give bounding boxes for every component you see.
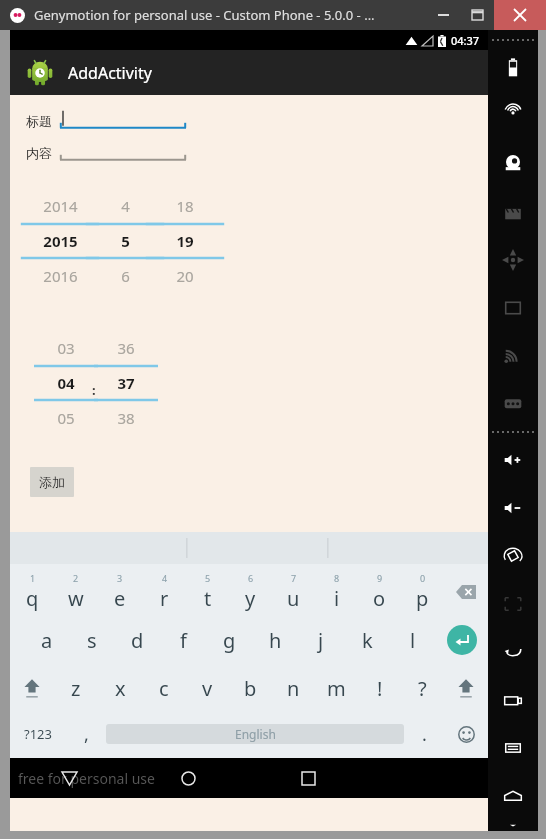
button[interactable]: Back xyxy=(488,628,538,676)
button[interactable]: 5 xyxy=(186,568,229,616)
staticText: ?123 xyxy=(24,725,52,743)
button[interactable] xyxy=(60,139,186,161)
staticText: p xyxy=(416,585,429,612)
staticText: 04:37 xyxy=(451,33,480,48)
staticText: 内容 xyxy=(26,145,52,161)
staticText: ! xyxy=(377,675,383,702)
button[interactable]: 2 xyxy=(54,568,98,616)
button[interactable]: Camera xyxy=(488,140,538,188)
button[interactable]: 2014 xyxy=(11,191,109,299)
button[interactable]: 6 xyxy=(229,568,272,616)
button[interactable]: g xyxy=(206,616,252,664)
button[interactable]: Record xyxy=(488,188,538,236)
button[interactable]: 4 xyxy=(142,568,186,616)
button[interactable]: Close xyxy=(494,0,546,30)
button[interactable]: 1 xyxy=(10,568,54,616)
button[interactable] xyxy=(60,107,186,129)
staticText: 7 xyxy=(291,572,297,584)
button[interactable]: Rotate xyxy=(488,532,538,580)
button[interactable]: Back xyxy=(10,758,129,798)
button[interactable]: Home xyxy=(488,772,538,820)
button[interactable]: Minimize xyxy=(426,0,460,30)
button[interactable]: Zoom 1:1 xyxy=(488,580,538,628)
button[interactable]: 18 xyxy=(136,191,234,299)
button[interactable]: d xyxy=(114,616,160,664)
button[interactable]: Backspace xyxy=(444,568,488,616)
staticText: 1 xyxy=(30,572,36,584)
button[interactable]: 3 xyxy=(98,568,142,616)
button[interactable]: s xyxy=(69,616,114,664)
button[interactable]: Volume down xyxy=(488,484,538,532)
staticText: AddActivity xyxy=(68,62,152,84)
button[interactable]: 8 xyxy=(315,568,358,616)
button[interactable]: ? xyxy=(401,664,444,712)
button[interactable]: Shift xyxy=(444,664,488,712)
button[interactable]: 添加 xyxy=(30,467,74,497)
staticText: 18 xyxy=(176,196,194,216)
button[interactable]: D-Pad xyxy=(488,236,538,284)
button[interactable]: j xyxy=(298,616,344,664)
button[interactable]: Recent apps xyxy=(488,676,538,724)
staticText: m xyxy=(327,675,346,702)
button[interactable]: l xyxy=(390,616,436,664)
staticText: b xyxy=(244,675,257,702)
button[interactable]: 7 xyxy=(272,568,315,616)
staticText: free for personal use xyxy=(18,769,155,788)
button[interactable]: Enter xyxy=(436,616,488,664)
button[interactable]: z xyxy=(54,664,98,712)
staticText: 0 xyxy=(420,572,426,584)
button[interactable]: 4 xyxy=(76,191,174,299)
button[interactable]: Menu xyxy=(488,724,538,772)
staticText: : xyxy=(92,381,96,399)
button[interactable]: Recents xyxy=(248,758,368,798)
staticText: y xyxy=(245,585,256,612)
button[interactable]: k xyxy=(344,616,390,664)
button[interactable]: GPS xyxy=(488,92,538,140)
button[interactable]: m xyxy=(315,664,358,712)
button[interactable]: h xyxy=(252,616,298,664)
button[interactable]: 0 xyxy=(401,568,444,616)
button[interactable]: 36 xyxy=(86,333,166,441)
staticText: 5 xyxy=(121,231,130,251)
staticText: 4 xyxy=(162,572,168,584)
staticText: 37 xyxy=(117,373,135,393)
staticText: 9 xyxy=(377,572,383,584)
button[interactable]: ?123 xyxy=(10,712,66,756)
button[interactable]: f xyxy=(160,616,206,664)
button[interactable]: , xyxy=(66,712,106,756)
button[interactable]: Identifiers xyxy=(488,284,538,332)
staticText: 3 xyxy=(117,572,123,584)
staticText: d xyxy=(131,627,144,654)
button[interactable]: SMS xyxy=(488,380,538,428)
staticText: 2016 xyxy=(43,266,78,286)
staticText: a xyxy=(41,627,53,654)
staticText: 4 xyxy=(121,196,130,216)
button[interactable]: n xyxy=(272,664,315,712)
staticText: i xyxy=(334,585,340,612)
button[interactable]: x xyxy=(98,664,142,712)
staticText: 2 xyxy=(73,572,79,584)
button[interactable]: Home xyxy=(129,758,248,798)
button[interactable]: Network xyxy=(488,332,538,380)
button[interactable]: Battery xyxy=(488,44,538,92)
button[interactable]: a xyxy=(24,616,69,664)
staticText: 2014 xyxy=(43,196,78,216)
button[interactable]: Emoji xyxy=(444,712,488,756)
staticText: 05 xyxy=(57,408,75,428)
button[interactable]: c xyxy=(142,664,186,712)
button[interactable]: v xyxy=(186,664,229,712)
staticText: 36 xyxy=(117,338,135,358)
button[interactable]: 9 xyxy=(358,568,401,616)
staticText: 2015 xyxy=(43,231,78,251)
button[interactable]: English xyxy=(106,724,404,744)
staticText: 添加 xyxy=(39,474,65,490)
button[interactable]: 03 xyxy=(26,333,106,441)
button[interactable]: b xyxy=(229,664,272,712)
staticText: ? xyxy=(418,675,427,702)
button[interactable]: Volume up xyxy=(488,436,538,484)
button[interactable]: More xyxy=(488,820,538,831)
button[interactable]: ! xyxy=(358,664,401,712)
button[interactable]: Maximize xyxy=(460,0,494,30)
button[interactable]: Shift xyxy=(10,664,54,712)
button[interactable]: . xyxy=(404,712,444,756)
